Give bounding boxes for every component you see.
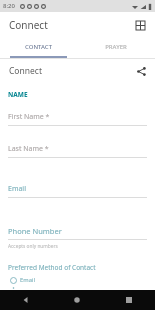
button[interactable]: Recent apps (103, 290, 155, 310)
button[interactable]: Phone (8, 286, 38, 290)
button[interactable]: Phone Number (8, 226, 147, 240)
button[interactable]: Email (8, 184, 147, 198)
button[interactable]: Share (132, 62, 150, 80)
staticText: CONTACT (25, 43, 52, 51)
staticText: Email (20, 276, 35, 284)
staticText: Preferred Method of Contact (8, 263, 96, 272)
staticText: 8:20 (3, 2, 15, 10)
staticText: Connect (9, 65, 42, 77)
button[interactable]: Last Name * (8, 144, 147, 158)
staticText: Connect (9, 18, 48, 32)
staticText: Email (8, 184, 26, 194)
staticText: Accepts only numbers (8, 243, 58, 250)
button[interactable]: Grid view (130, 15, 150, 35)
staticText: NAME (8, 90, 28, 99)
button[interactable]: CONTACT (0, 38, 77, 56)
button[interactable]: First Name * (8, 112, 147, 126)
button[interactable]: PRAYER (77, 38, 155, 56)
staticText: PRAYER (105, 43, 127, 51)
staticText: Phone Number (8, 226, 62, 236)
button[interactable]: Back (0, 290, 51, 310)
button[interactable]: Email (8, 275, 35, 285)
staticText: Last Name * (8, 144, 49, 154)
button[interactable]: Home (51, 290, 103, 310)
staticText: First Name * (8, 112, 50, 122)
